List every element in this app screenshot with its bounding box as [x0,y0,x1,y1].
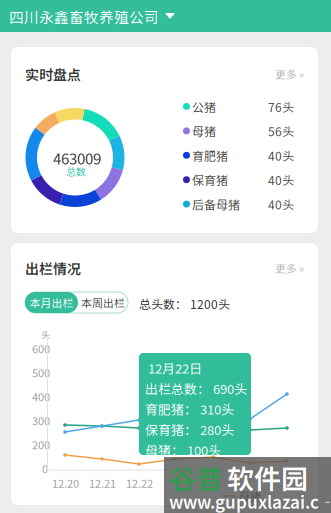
staticText: 更多 » [275,260,304,276]
button[interactable]: 四川永鑫畜牧养殖公司 [0,0,331,32]
button[interactable]: 更多 » [264,66,304,82]
staticText: 本月出栏 [29,294,73,310]
staticText: 200 [32,436,50,452]
button[interactable]: 本周出栏 [78,292,128,313]
staticText: 母猪： 100头 [145,440,221,459]
staticText: 育肥猪 [192,147,228,164]
staticText: 保育猪 [192,171,228,189]
staticText: 76头 [268,98,294,115]
staticText: 实时盘点 [25,64,81,84]
staticText: 保育猪： 280头 [145,420,234,439]
staticText: 更多 » [275,66,304,82]
staticText: 12.20 [52,475,79,491]
staticText: 40头 [268,147,294,164]
staticText: 四川永鑫畜牧养殖公司 [9,6,159,27]
staticText: 40头 [268,196,294,213]
button[interactable]: 更多 » [264,260,304,276]
staticText: 育肥猪： 310头 [145,399,234,418]
staticText: 出栏情况 [25,258,81,278]
staticText: 0 [42,460,48,476]
staticText: 母猪 [239,488,261,504]
button[interactable]: 本月出栏 [25,292,78,313]
staticText: 出栏总数： 690头 [145,379,247,398]
staticText: 56头 [268,122,294,140]
staticText: 12.21 [89,475,116,491]
staticText: 总数 [66,164,86,178]
staticText: 400 [32,388,50,404]
staticText: www.gupuxlazai.com [169,489,331,513]
staticText: 12月22日 [148,358,202,377]
staticText: 463009 [53,147,101,169]
staticText: 头 [41,328,50,341]
staticText: 本周出栏 [81,294,125,310]
staticText: 12.22 [126,475,153,491]
staticText: 后备母猪 [192,196,240,213]
staticText: 总头数： 1200头 [139,295,230,312]
staticText: 公猪 [192,98,216,115]
staticText: 软件园 [227,458,308,497]
staticText: 40头 [268,171,294,189]
staticText: 母猪 [192,122,216,140]
staticText: 600 [32,340,50,356]
staticText: 谷普 [169,458,223,497]
staticText: 300 [32,412,50,428]
staticText: 500 [32,364,50,380]
